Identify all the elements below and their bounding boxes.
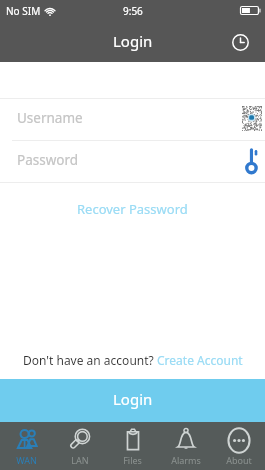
- button[interactable]: LAN: [53, 422, 106, 470]
- staticText: Login: [113, 31, 153, 51]
- staticText: Files: [123, 454, 142, 466]
- button[interactable]: Recover Password: [67, 197, 198, 221]
- staticText: Don't have an account?: [23, 352, 157, 368]
- button[interactable]: Create Account: [157, 352, 243, 368]
- staticText: Recover Password: [77, 200, 188, 218]
- button[interactable]: Username: [0, 99, 265, 140]
- button[interactable]: About: [212, 422, 265, 470]
- staticText: Password: [17, 151, 79, 169]
- staticText: Login: [113, 389, 153, 409]
- button[interactable]: Alarms: [159, 422, 212, 470]
- staticText: About: [226, 454, 252, 466]
- staticText: No SIM: [6, 4, 41, 18]
- button[interactable]: Show password: [239, 141, 265, 182]
- staticText: WAN: [16, 454, 37, 466]
- button[interactable]: WAN: [0, 422, 53, 470]
- staticText: LAN: [71, 454, 89, 466]
- staticText: Username: [17, 109, 83, 127]
- staticText: Alarms: [171, 454, 201, 466]
- staticText: 9:56: [123, 4, 143, 18]
- button[interactable]: Login: [0, 379, 265, 422]
- button[interactable]: History: [225, 27, 255, 57]
- button[interactable]: Scan QR code: [239, 99, 265, 140]
- button[interactable]: Password: [0, 141, 265, 182]
- button[interactable]: Files: [106, 422, 159, 470]
- staticText: Create Account: [157, 352, 243, 368]
